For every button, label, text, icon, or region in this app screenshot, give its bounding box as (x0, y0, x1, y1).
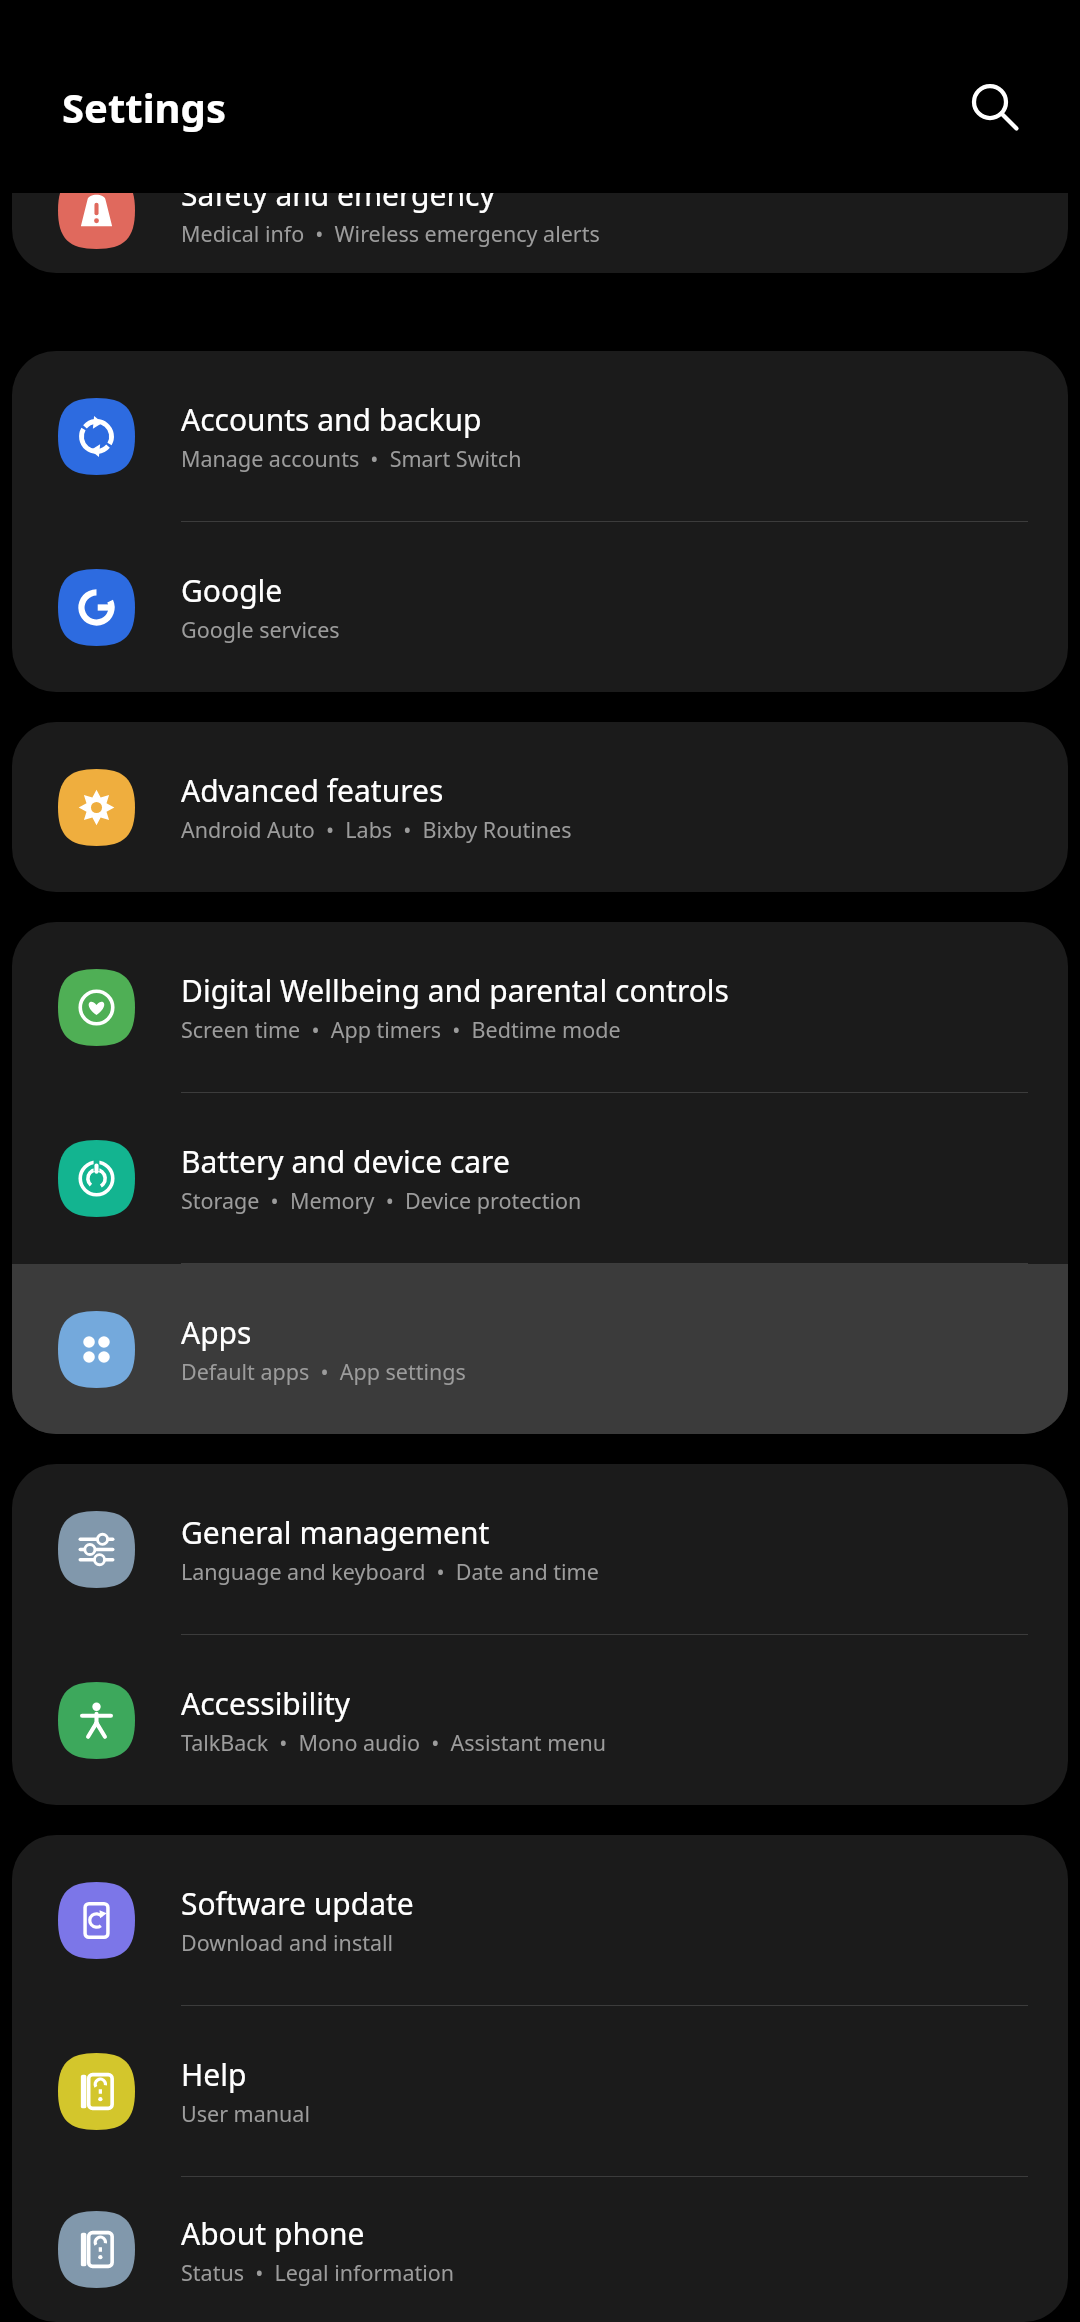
button[interactable]: Software update (12, 1835, 1068, 2005)
staticText: About phone (181, 2213, 365, 2254)
button[interactable]: Digital Wellbeing and parental controls (12, 922, 1068, 1092)
staticText: Default apps • App settings (181, 1357, 466, 1386)
staticText: Accounts and backup (181, 399, 482, 440)
staticText: Google services (181, 615, 340, 644)
staticText: TalkBack • Mono audio • Assistant menu (181, 1728, 607, 1757)
button[interactable]: Advanced features (12, 722, 1068, 892)
button[interactable]: General management (12, 1464, 1068, 1634)
button[interactable]: About phone (12, 2177, 1068, 2322)
button[interactable]: Help (12, 2006, 1068, 2176)
staticText: Help (181, 2054, 247, 2095)
staticText: Android Auto • Labs • Bixby Routines (181, 815, 572, 844)
button[interactable]: Battery and device care (12, 1093, 1068, 1263)
staticText: Language and keyboard • Date and time (181, 1557, 599, 1586)
staticText: User manual (181, 2099, 310, 2128)
staticText: Settings (62, 80, 226, 134)
staticText: Google (181, 570, 283, 611)
button[interactable]: Accessibility (12, 1635, 1068, 1805)
staticText: Advanced features (181, 770, 444, 811)
button[interactable]: Search (950, 63, 1038, 151)
staticText: Accessibility (181, 1683, 351, 1724)
button[interactable]: Google (12, 522, 1068, 692)
staticText: Download and install (181, 1928, 394, 1957)
button[interactable]: Apps (12, 1264, 1068, 1434)
staticText: Battery and device care (181, 1141, 510, 1182)
staticText: Screen time • App timers • Bedtime mode (181, 1015, 621, 1044)
staticText: Apps (181, 1312, 252, 1353)
staticText: Medical info • Wireless emergency alerts (181, 219, 600, 248)
staticText: General management (181, 1512, 490, 1553)
button[interactable]: Accounts and backup (12, 351, 1068, 521)
staticText: Safety and emergency (181, 193, 495, 215)
staticText: Status • Legal information (181, 2258, 455, 2287)
staticText: Manage accounts • Smart Switch (181, 444, 522, 473)
staticText: Digital Wellbeing and parental controls (181, 970, 729, 1011)
staticText: Storage • Memory • Device protection (181, 1186, 582, 1215)
staticText: Software update (181, 1883, 414, 1924)
button[interactable]: Safety and emergency (12, 193, 1068, 273)
